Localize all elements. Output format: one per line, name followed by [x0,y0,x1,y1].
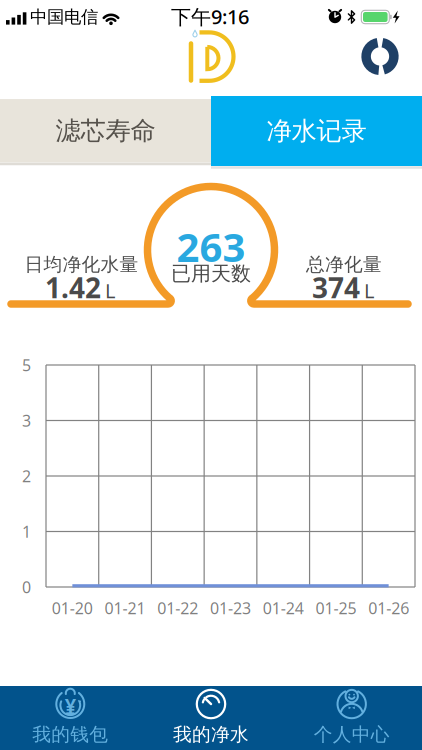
staticText: 2 [22,465,31,487]
staticText: 1 [22,521,31,542]
button[interactable]: 同步 [358,34,402,78]
staticText: 01-24 [263,597,304,619]
staticText: ¥ [65,692,76,719]
button[interactable]: 净水记录 [211,96,422,166]
staticText: 01-25 [315,597,356,619]
staticText: 我的净水 [173,723,249,746]
staticText: 日均净化水量 [24,253,138,276]
button[interactable]: ¥ [0,685,141,749]
staticText: 01-21 [105,597,146,619]
staticText: 5 [22,354,31,376]
staticText: 个人中心 [314,723,390,746]
staticText: 滤芯寿命 [55,115,155,146]
staticText: 已用天数 [171,261,251,286]
staticText: L [105,277,115,304]
button[interactable]: 个人中心 [281,685,422,749]
staticText: 1.42 [45,269,101,306]
staticText: 01-23 [210,597,251,619]
staticText: 我的钱包 [32,723,108,746]
staticText: 下午9:16 [171,3,249,30]
staticText: 0 [22,576,31,598]
staticText: 净水记录 [266,115,366,146]
staticText: 01-26 [368,597,409,619]
staticText: 374 [312,269,360,306]
staticText: 263 [176,220,245,273]
staticText: 01-20 [52,597,93,619]
staticText: 01-22 [157,597,198,619]
staticText: 总净化量 [306,253,382,276]
staticText: 3 [22,410,31,431]
staticText: L [364,277,374,304]
staticText: 中国电信 [30,6,98,28]
button[interactable]: 滤芯寿命 [0,99,211,163]
button[interactable]: 我的净水 [141,685,281,749]
